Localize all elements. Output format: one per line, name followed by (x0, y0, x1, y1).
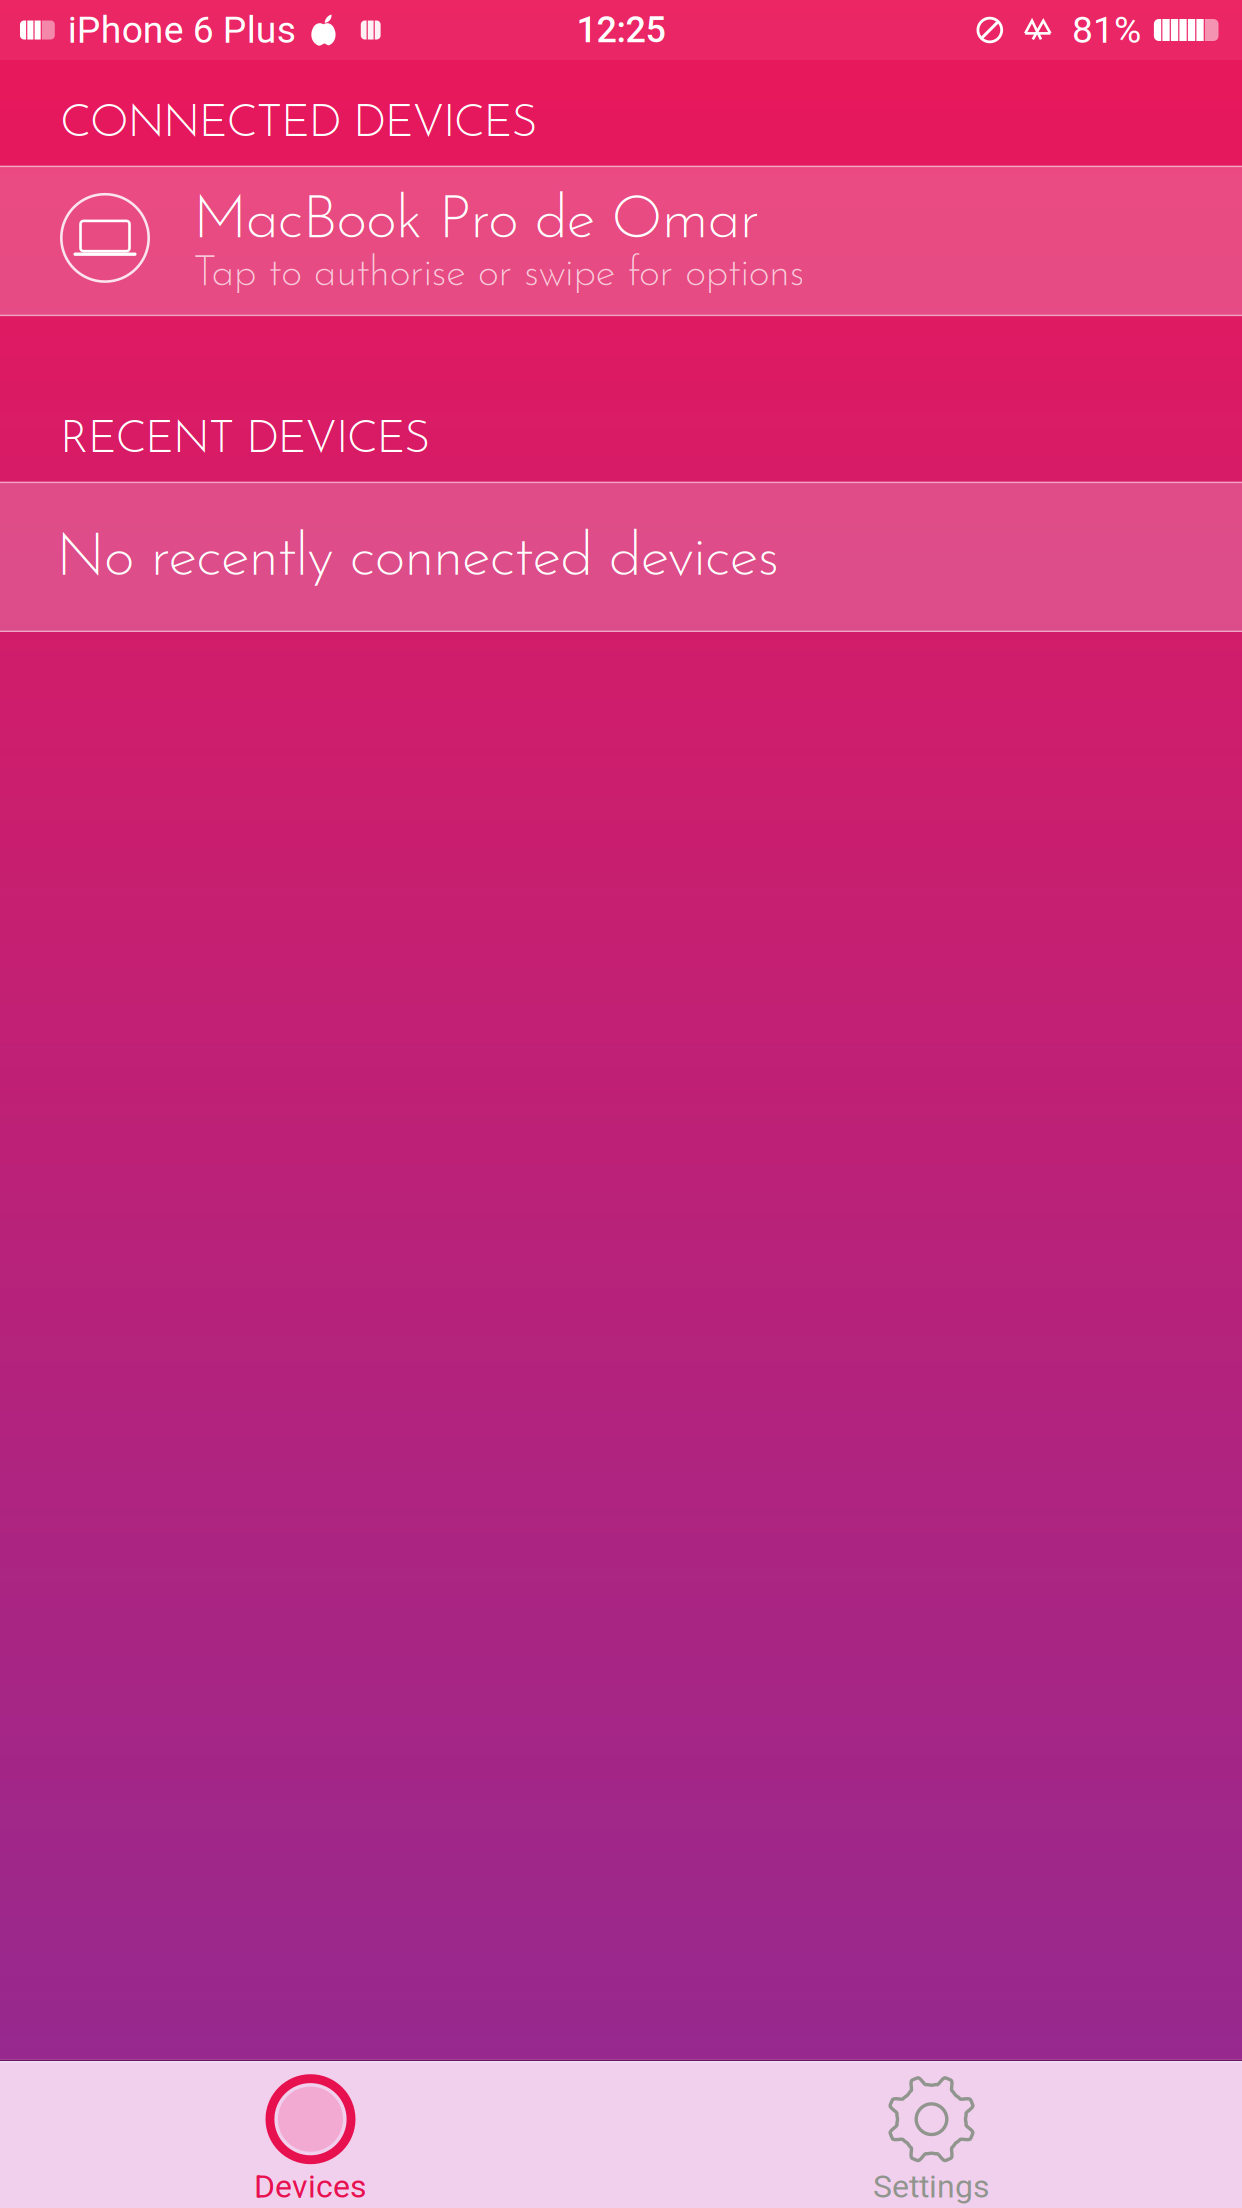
staticText: 12:25 (576, 9, 665, 51)
staticText: iPhone 6 Plus (68, 8, 296, 52)
staticText: Settings (873, 2168, 990, 2205)
staticText: MacBook Pro de Omar (193, 192, 759, 252)
staticText: Tap to authorise or swipe for options (193, 254, 804, 295)
staticText: CONNECTED DEVICES (60, 102, 537, 147)
staticText: RECENT DEVICES (60, 418, 430, 463)
button[interactable]: MacBook Pro de Omar (0, 166, 1242, 316)
button[interactable]: Devices (0, 2060, 621, 2208)
staticText: No recently connected devices (56, 530, 779, 590)
staticText: Devices (254, 2168, 367, 2205)
staticText: 81% (1072, 8, 1141, 52)
button[interactable]: Settings (621, 2060, 1242, 2208)
